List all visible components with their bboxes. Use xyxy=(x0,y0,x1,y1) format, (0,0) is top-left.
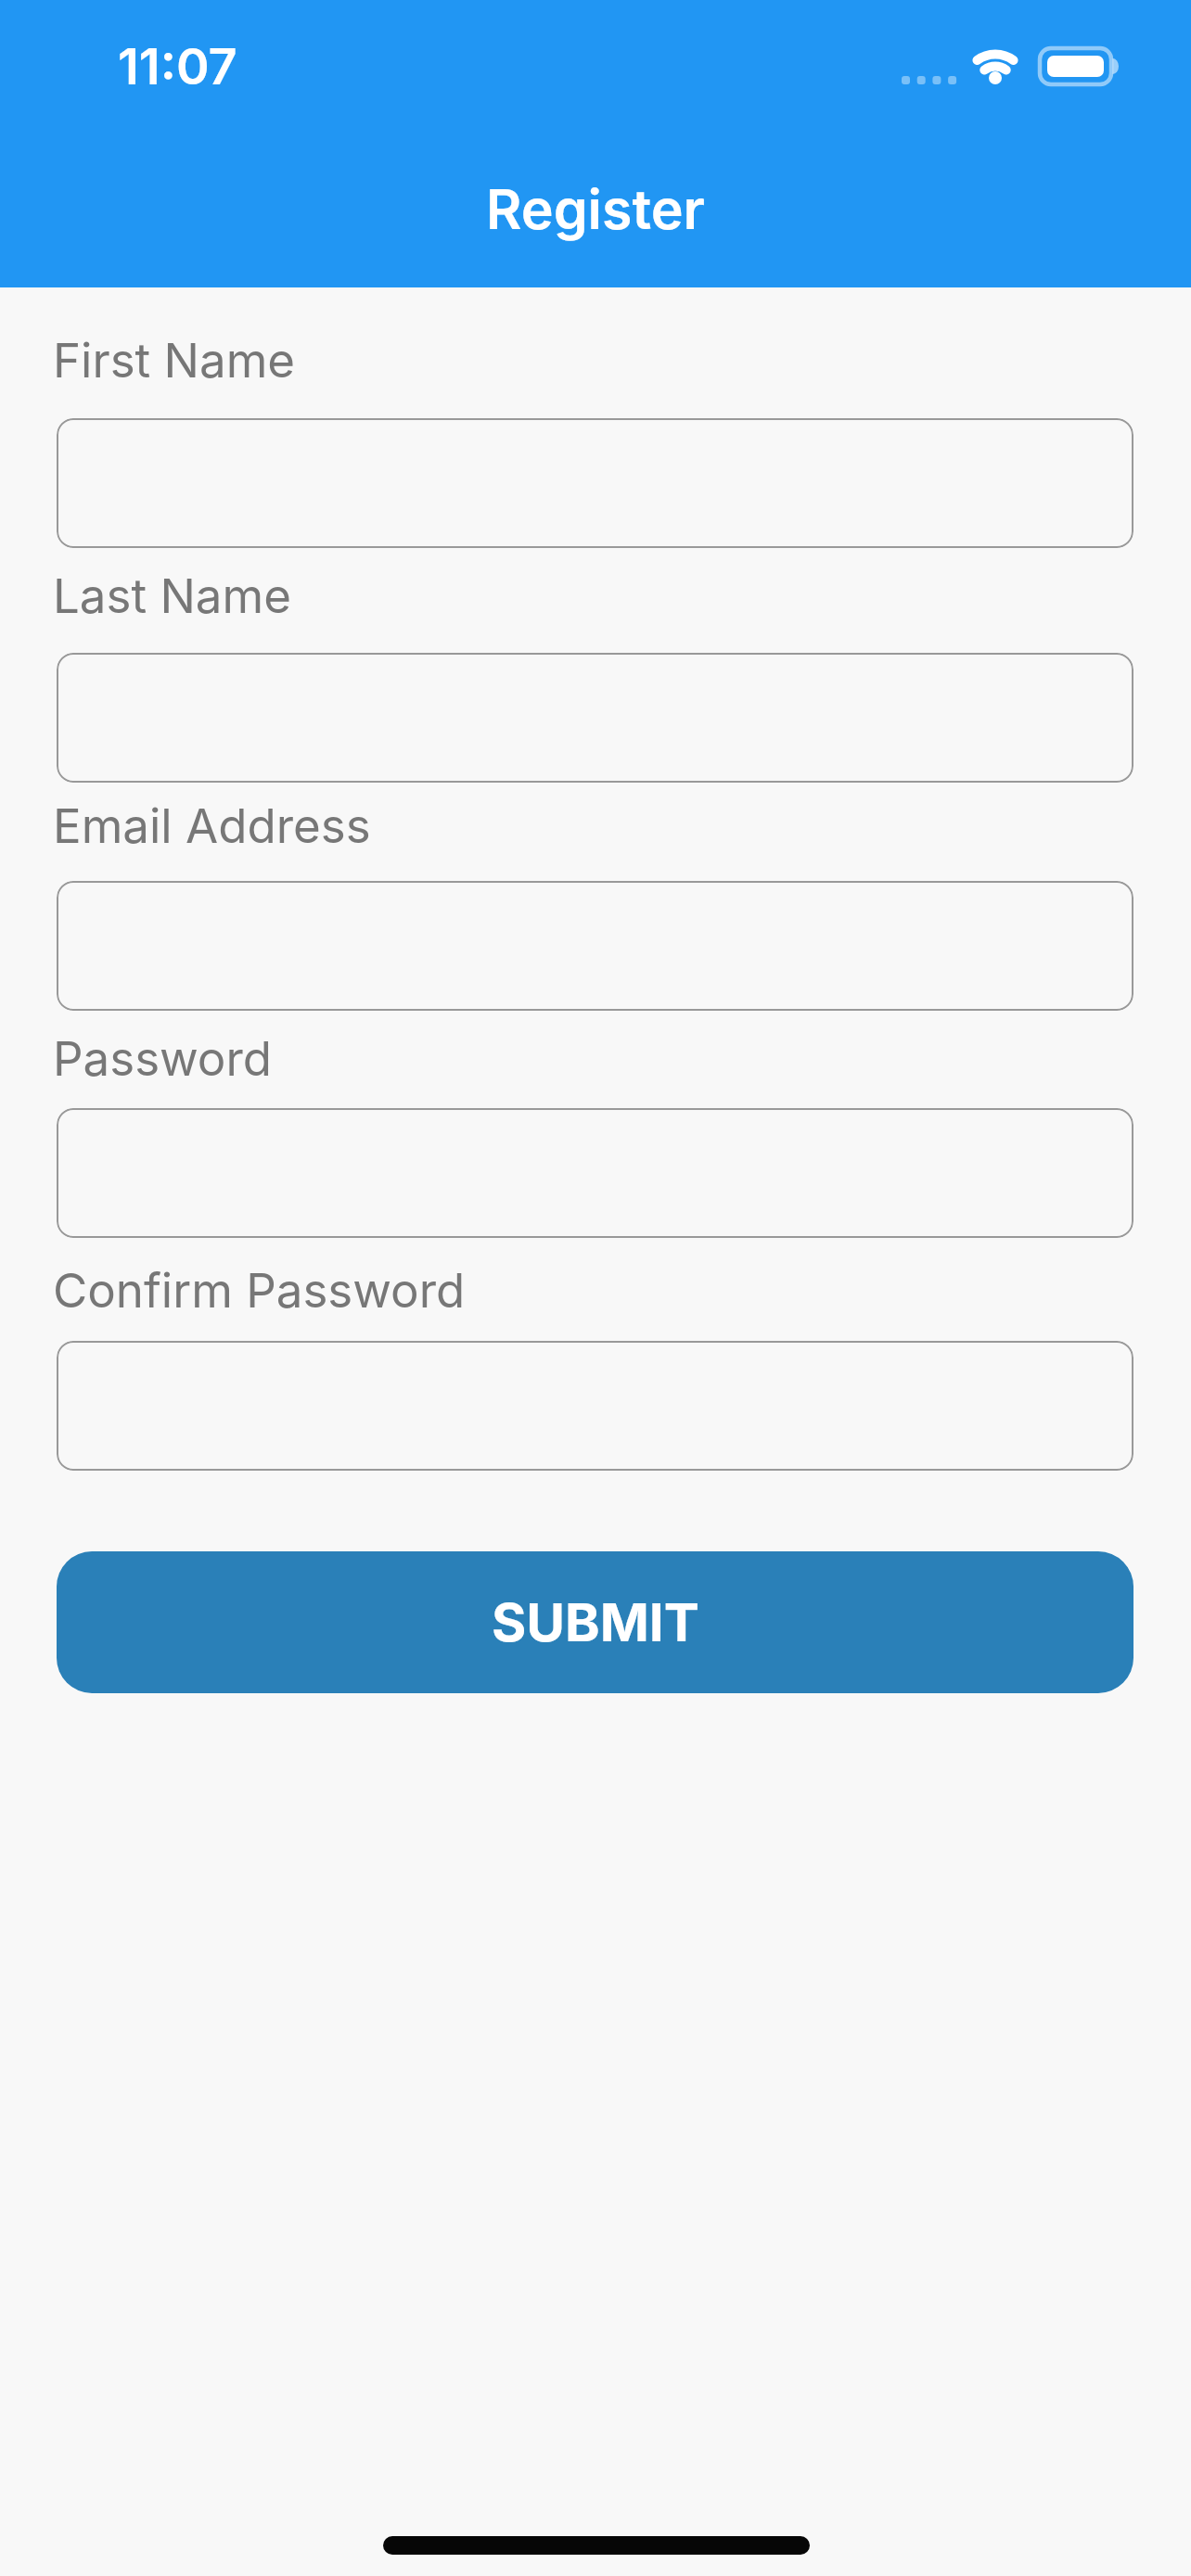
button[interactable] xyxy=(57,1341,1133,1471)
button[interactable] xyxy=(57,418,1133,548)
staticText: SUBMIT xyxy=(492,1590,699,1654)
staticText: Last Name xyxy=(53,567,291,625)
staticText: Email Address xyxy=(53,797,371,855)
button[interactable] xyxy=(57,653,1133,783)
button[interactable] xyxy=(57,1108,1133,1238)
staticText: First Name xyxy=(53,332,296,389)
staticText: Register xyxy=(486,176,705,242)
staticText: 11:07 xyxy=(118,36,237,96)
staticText: Password xyxy=(53,1030,273,1088)
button[interactable]: SUBMIT xyxy=(57,1551,1133,1693)
button[interactable] xyxy=(57,881,1133,1011)
staticText: Confirm Password xyxy=(53,1262,466,1320)
